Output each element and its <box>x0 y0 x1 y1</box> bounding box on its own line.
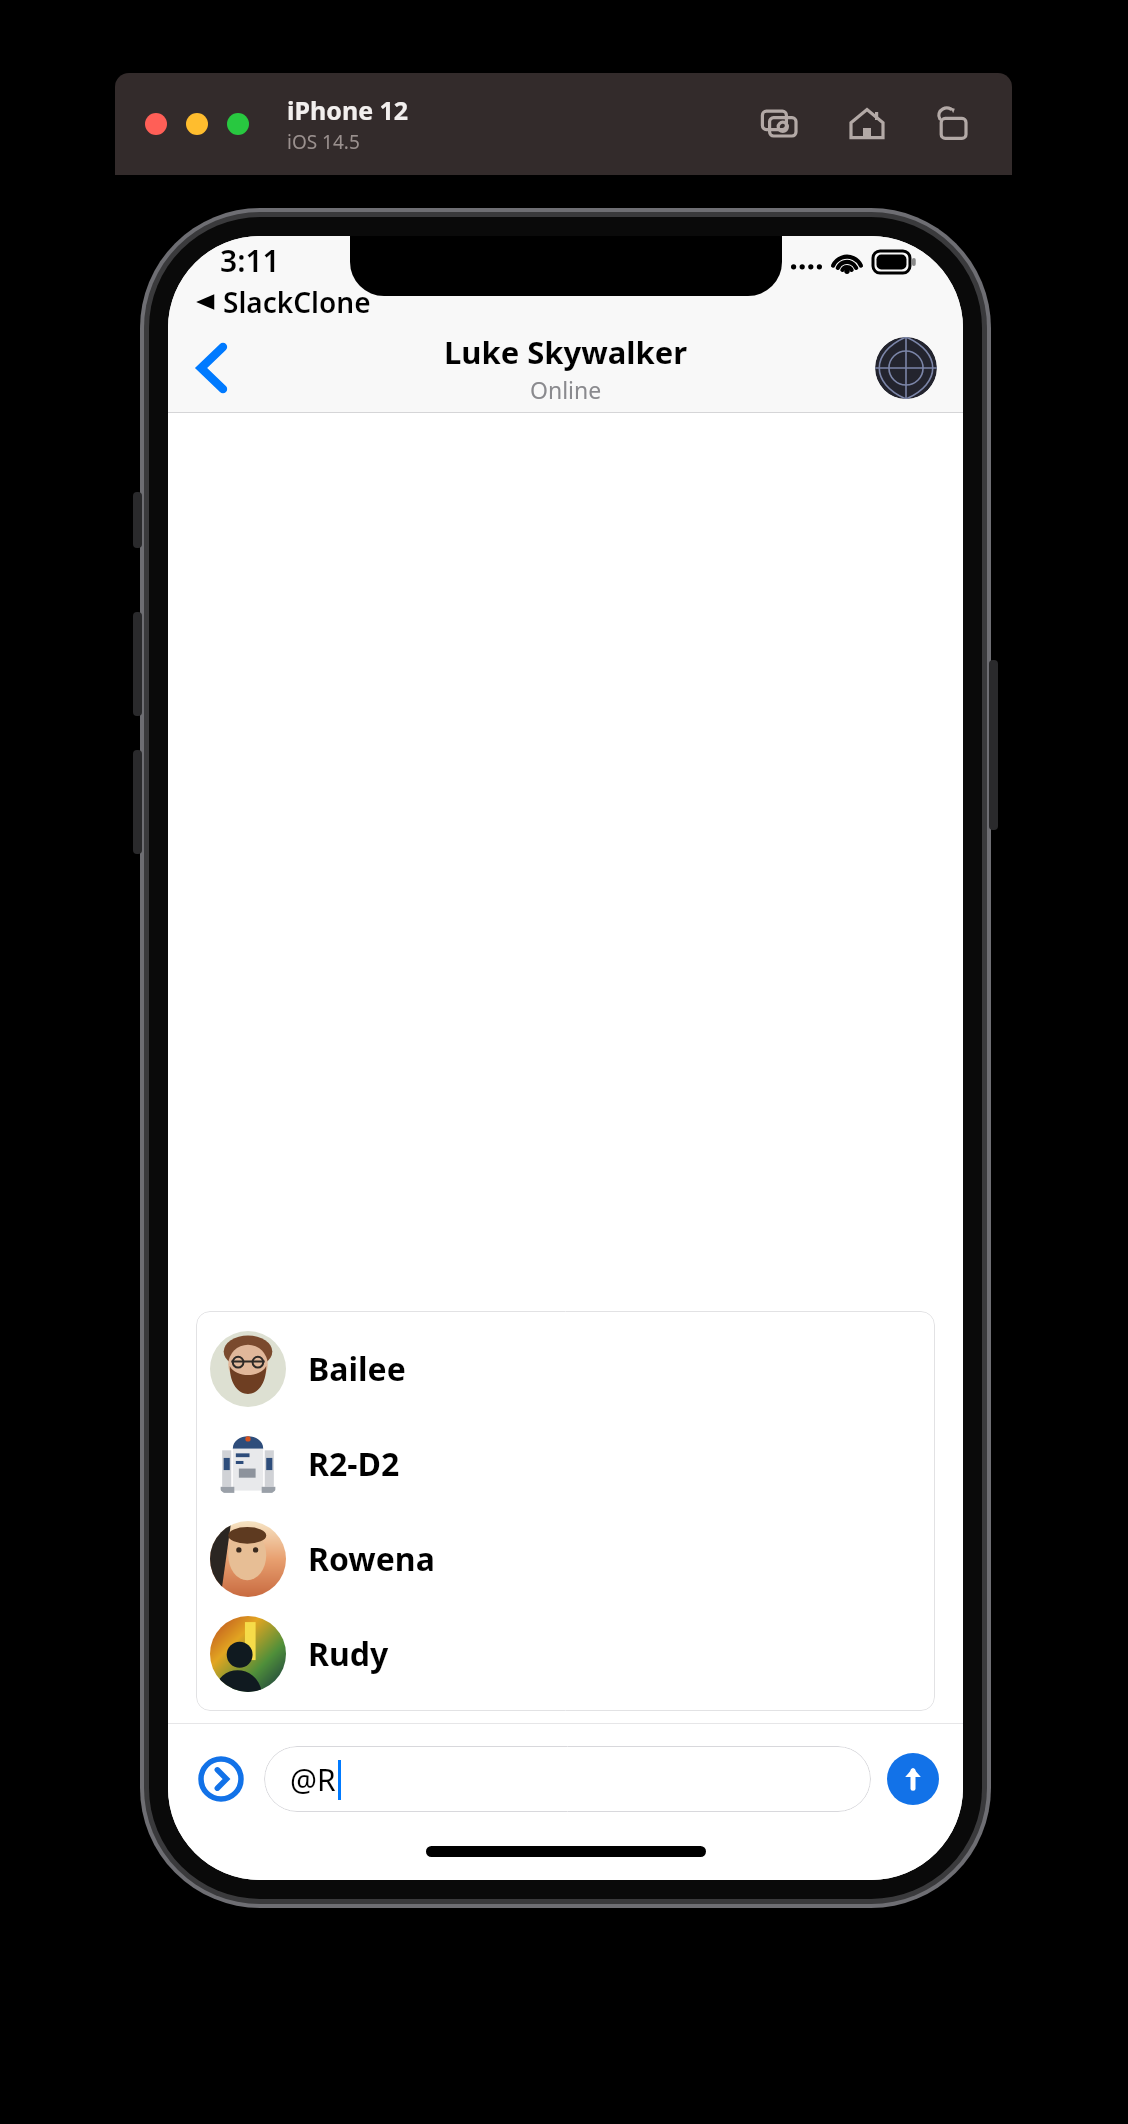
button[interactable]: Profile <box>875 337 937 399</box>
button[interactable]: Send <box>887 1753 939 1805</box>
button[interactable]: R2-D2 <box>196 1416 935 1511</box>
staticText: Online <box>530 374 602 405</box>
button[interactable]: Rotate <box>928 98 980 150</box>
staticText: @R <box>290 1759 336 1800</box>
staticText: Rudy <box>308 1632 389 1676</box>
staticText: SlackClone <box>223 283 371 321</box>
button[interactable]: Screenshot <box>754 98 806 150</box>
button[interactable]: SlackClone <box>194 283 371 321</box>
staticText: Rowena <box>308 1537 435 1581</box>
staticText: iPhone 12 <box>287 93 409 127</box>
staticText: iOS 14.5 <box>287 129 360 155</box>
staticText: 3:11 <box>220 240 280 281</box>
button[interactable]: Bailee <box>196 1321 935 1416</box>
button[interactable]: Rudy <box>196 1606 935 1701</box>
button[interactable]: Close <box>145 113 167 135</box>
staticText: R2-D2 <box>308 1442 400 1486</box>
staticText: Luke Skywalker <box>444 331 688 373</box>
button[interactable]: @R <box>264 1746 871 1812</box>
button[interactable]: Home <box>841 98 893 150</box>
button[interactable]: More actions <box>192 1750 250 1808</box>
staticText: Bailee <box>308 1347 406 1391</box>
button[interactable]: Rowena <box>196 1511 935 1606</box>
button[interactable]: Minimise <box>186 113 208 135</box>
button[interactable]: Zoom <box>227 113 249 135</box>
button[interactable]: Back <box>180 336 244 400</box>
